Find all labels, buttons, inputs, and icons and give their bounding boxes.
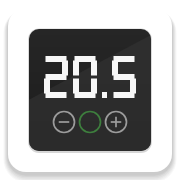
button[interactable]: Decrease temperature bbox=[53, 111, 75, 133]
button[interactable]: Increase temperature bbox=[105, 111, 127, 133]
button[interactable]: Toggle heating bbox=[79, 111, 101, 133]
button[interactable]: Thermostat, 20.5 degrees bbox=[0, 0, 180, 180]
